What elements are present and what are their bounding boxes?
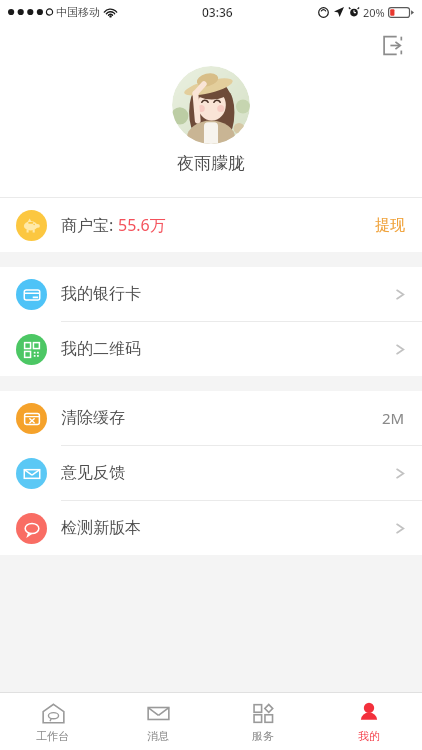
button[interactable]: 工作台 [0, 693, 105, 750]
button[interactable]: 我的 [316, 693, 422, 750]
staticText: 55.6万 [118, 214, 166, 236]
staticText: 20% [363, 5, 385, 20]
staticText: 中国移动 [56, 5, 100, 19]
button[interactable]: 意见反馈 [0, 446, 422, 501]
staticText: 服务 [252, 729, 274, 743]
button[interactable]: 服务 [210, 693, 316, 750]
staticText: 检测新版本 [61, 518, 141, 538]
staticText: 夜雨朦胧 [177, 153, 245, 174]
button[interactable]: Logout [376, 29, 408, 61]
staticText: 我的二维码 [61, 339, 141, 359]
staticText: 商户宝: [61, 214, 118, 236]
button[interactable]: 检测新版本 [0, 501, 422, 555]
button[interactable]: 消息 [105, 693, 210, 750]
staticText: 消息 [147, 729, 169, 743]
button[interactable]: 我的二维码 [0, 322, 422, 376]
button[interactable]: 商户宝: [0, 198, 422, 252]
staticText: 工作台 [36, 729, 69, 743]
staticText: 意见反馈 [61, 463, 125, 483]
button[interactable] [172, 66, 250, 144]
staticText: 我的 [358, 729, 380, 743]
button[interactable]: 清除缓存 [0, 391, 422, 446]
staticText: 03:36 [202, 4, 233, 20]
staticText: 提现 [375, 216, 405, 235]
staticText: 2M [382, 408, 405, 428]
staticText: 清除缓存 [61, 408, 125, 428]
button[interactable]: 我的银行卡 [0, 267, 422, 322]
staticText: 我的银行卡 [61, 284, 141, 304]
